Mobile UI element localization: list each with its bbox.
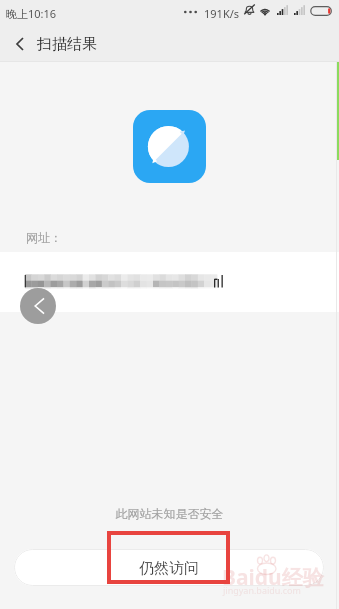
button[interactable]: Back — [4, 25, 36, 62]
staticText: 此网站未知是否安全 — [0, 506, 339, 521]
staticText: jingyan.baidu.com — [223, 584, 301, 596]
button[interactable]: Back gesture — [20, 288, 56, 324]
staticText: 网址： — [26, 230, 62, 245]
staticText: 仍然访问 — [139, 559, 199, 578]
staticText: 晚上10:16 — [6, 6, 57, 21]
staticText: 扫描结果 — [37, 35, 97, 54]
button[interactable]: 仍然访问 — [14, 549, 324, 586]
staticText: Baidu经验 — [222, 563, 324, 592]
staticText: 191K/s — [204, 6, 240, 21]
